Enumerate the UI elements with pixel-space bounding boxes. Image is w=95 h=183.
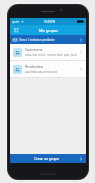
staticText: Crear un grupo: [34, 156, 59, 161]
staticText: Ricohnaba: [25, 64, 43, 69]
button[interactable]: Ricohnaba: [10, 61, 86, 77]
staticText: aaa bnbaa aaa an hanuani: [25, 70, 58, 74]
staticText: Suénacme: [25, 47, 43, 52]
button[interactable]: Suénacme: [10, 44, 86, 60]
button[interactable]: Menu: [12, 26, 20, 34]
staticText: Mis grupos: [39, 28, 58, 33]
staticText: Tienes 1 invitacion pendiente: [19, 38, 55, 42]
staticText: sprint: [12, 20, 20, 24]
staticText: 10:09 PM: [44, 20, 56, 24]
staticText: aaaa cbaa bcnia cannlia cbad paia joiuti…: [25, 53, 78, 57]
button[interactable]: Tienes 1 invitacion pendiente: [10, 35, 86, 44]
button[interactable]: Crear un grupo: [10, 154, 86, 163]
